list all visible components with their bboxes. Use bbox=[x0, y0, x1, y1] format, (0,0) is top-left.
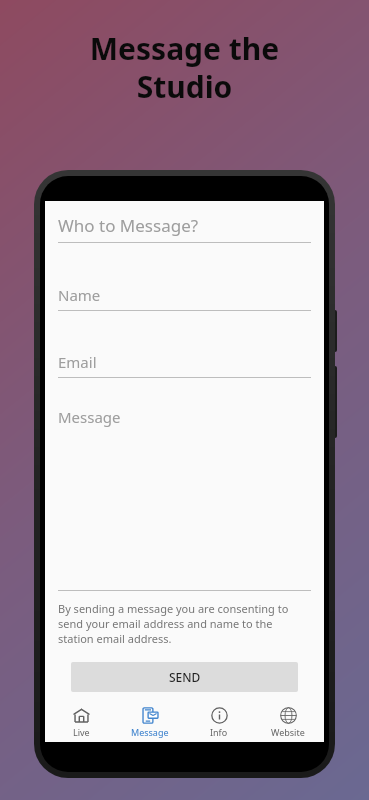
button[interactable]: Email bbox=[58, 352, 311, 378]
staticText: Message bbox=[58, 407, 121, 427]
staticText: Info bbox=[210, 726, 228, 738]
button[interactable]: Who to Message? bbox=[58, 214, 311, 243]
staticText: Name bbox=[58, 285, 101, 305]
button[interactable]: Name bbox=[58, 285, 311, 311]
staticText: By sending a message you are consenting … bbox=[58, 601, 311, 646]
button[interactable]: Info bbox=[186, 702, 252, 742]
button[interactable]: Website bbox=[255, 702, 321, 742]
button[interactable]: SEND bbox=[71, 662, 298, 692]
staticText: Message bbox=[131, 726, 169, 738]
staticText: Website bbox=[271, 726, 305, 738]
staticText: SEND bbox=[169, 669, 201, 685]
staticText: Message the Studio bbox=[24, 28, 345, 107]
staticText: Live bbox=[73, 726, 90, 738]
staticText: Email bbox=[58, 352, 97, 372]
button[interactable]: Message bbox=[58, 405, 311, 591]
button[interactable]: Message bbox=[117, 702, 183, 742]
button[interactable]: Live bbox=[48, 702, 114, 742]
staticText: Who to Message? bbox=[58, 214, 199, 237]
